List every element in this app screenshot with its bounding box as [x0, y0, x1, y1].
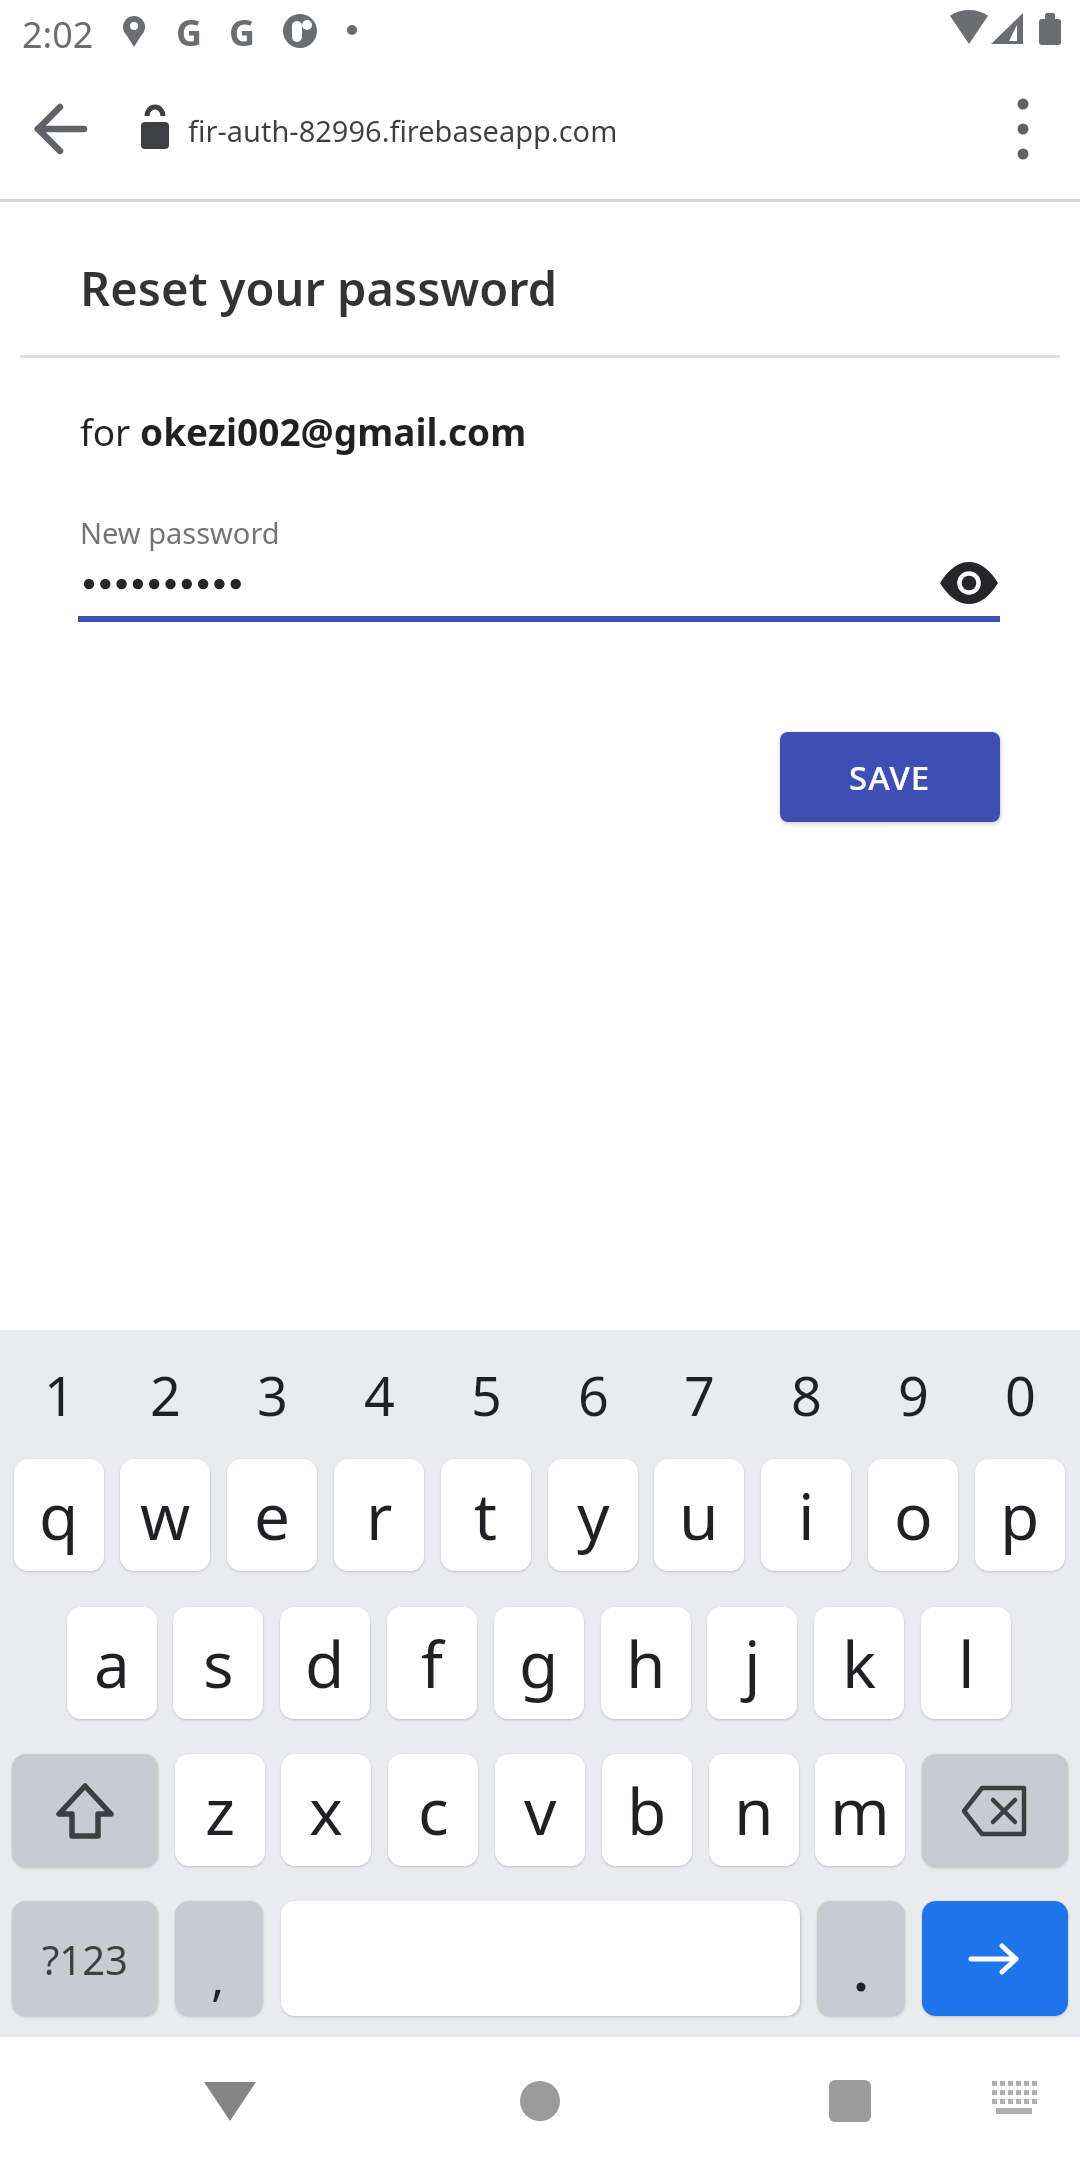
staticText: w: [140, 1472, 191, 1559]
button[interactable]: [922, 1901, 1068, 2016]
button[interactable]: 4: [334, 1330, 424, 1460]
staticText: 6: [578, 1358, 609, 1432]
staticText: g: [519, 1620, 559, 1707]
button[interactable]: [490, 2060, 590, 2140]
staticText: r: [366, 1472, 393, 1559]
staticText: 3: [257, 1358, 288, 1432]
button[interactable]: ,: [175, 1901, 263, 2016]
button[interactable]: x: [281, 1754, 371, 1866]
button[interactable]: f: [387, 1607, 477, 1719]
button[interactable]: [993, 88, 1053, 172]
button[interactable]: c: [388, 1754, 478, 1866]
staticText: G: [176, 8, 203, 54]
button[interactable]: ?123: [12, 1901, 158, 2016]
button[interactable]: [800, 2060, 900, 2140]
button[interactable]: y: [548, 1459, 638, 1571]
button[interactable]: z: [175, 1754, 265, 1866]
staticText: 4: [364, 1358, 395, 1432]
button[interactable]: [985, 2065, 1055, 2135]
button[interactable]: o: [868, 1459, 958, 1571]
button[interactable]: 6: [548, 1330, 638, 1460]
button[interactable]: g: [494, 1607, 584, 1719]
staticText: j: [744, 1620, 761, 1707]
staticText: t: [474, 1472, 498, 1559]
button[interactable]: a: [67, 1607, 157, 1719]
staticText: 5: [471, 1358, 502, 1432]
staticText: m: [830, 1767, 890, 1854]
staticText: for okezi002@gmail.com: [80, 406, 527, 456]
button[interactable]: t: [441, 1459, 531, 1571]
staticText: x: [309, 1767, 343, 1854]
staticText: New password: [80, 513, 280, 552]
staticText: d: [305, 1620, 345, 1707]
button[interactable]: [922, 1754, 1068, 1867]
staticText: y: [577, 1472, 610, 1559]
button[interactable]: 7: [654, 1330, 744, 1460]
button[interactable]: [180, 2060, 280, 2140]
button[interactable]: k: [814, 1607, 904, 1719]
staticText: e: [254, 1472, 291, 1559]
button[interactable]: u: [654, 1459, 744, 1571]
button[interactable]: [936, 556, 1002, 610]
button[interactable]: s: [173, 1607, 263, 1719]
button[interactable]: 1: [14, 1330, 104, 1460]
button[interactable]: 8: [761, 1330, 851, 1460]
staticText: 9: [898, 1358, 929, 1432]
button[interactable]: d: [280, 1607, 370, 1719]
button[interactable]: w: [120, 1459, 210, 1571]
staticText: G: [229, 8, 256, 54]
staticText: 8: [791, 1358, 822, 1432]
staticText: o: [894, 1472, 933, 1559]
staticText: z: [205, 1767, 236, 1854]
button[interactable]: v: [495, 1754, 585, 1866]
button[interactable]: SAVE: [780, 732, 1000, 822]
staticText: ,: [211, 1943, 225, 2011]
button[interactable]: 2: [120, 1330, 210, 1460]
staticText: fir-auth-82996.firebaseapp.com: [188, 111, 618, 150]
button[interactable]: 9: [868, 1330, 958, 1460]
button[interactable]: r: [334, 1459, 424, 1571]
button[interactable]: e: [227, 1459, 317, 1571]
button[interactable]: b: [602, 1754, 692, 1866]
button[interactable]: j: [707, 1607, 797, 1719]
staticText: b: [627, 1767, 667, 1854]
staticText: 0: [1005, 1358, 1036, 1432]
button[interactable]: 5: [441, 1330, 531, 1460]
staticText: c: [418, 1767, 449, 1854]
staticText: f: [421, 1620, 444, 1707]
staticText: n: [734, 1767, 774, 1854]
staticText: 7: [684, 1358, 715, 1432]
button[interactable]: 0: [975, 1330, 1065, 1460]
button[interactable]: q: [14, 1459, 104, 1571]
staticText: u: [679, 1472, 719, 1559]
button[interactable]: [20, 88, 104, 172]
staticText: SAVE: [849, 755, 931, 800]
staticText: i: [798, 1472, 815, 1559]
staticText: k: [842, 1620, 877, 1707]
button[interactable]: 3: [227, 1330, 317, 1460]
staticText: 1: [44, 1358, 75, 1432]
button[interactable]: i: [761, 1459, 851, 1571]
button[interactable]: h: [601, 1607, 691, 1719]
staticText: ?123: [42, 1932, 128, 1986]
staticText: l: [958, 1620, 975, 1707]
button[interactable]: p: [975, 1459, 1065, 1571]
button[interactable]: m: [815, 1754, 905, 1866]
staticText: s: [203, 1620, 234, 1707]
staticText: v: [524, 1767, 557, 1854]
staticText: h: [626, 1620, 666, 1707]
staticText: a: [94, 1620, 130, 1707]
button[interactable]: [12, 1754, 158, 1867]
button[interactable]: [817, 1901, 905, 2016]
staticText: q: [39, 1472, 79, 1559]
staticText: Reset your password: [80, 256, 558, 320]
staticText: 2:02: [22, 10, 94, 59]
staticText: p: [1000, 1472, 1040, 1559]
staticText: 2: [150, 1358, 181, 1432]
button[interactable]: l: [921, 1607, 1011, 1719]
button[interactable]: n: [709, 1754, 799, 1866]
